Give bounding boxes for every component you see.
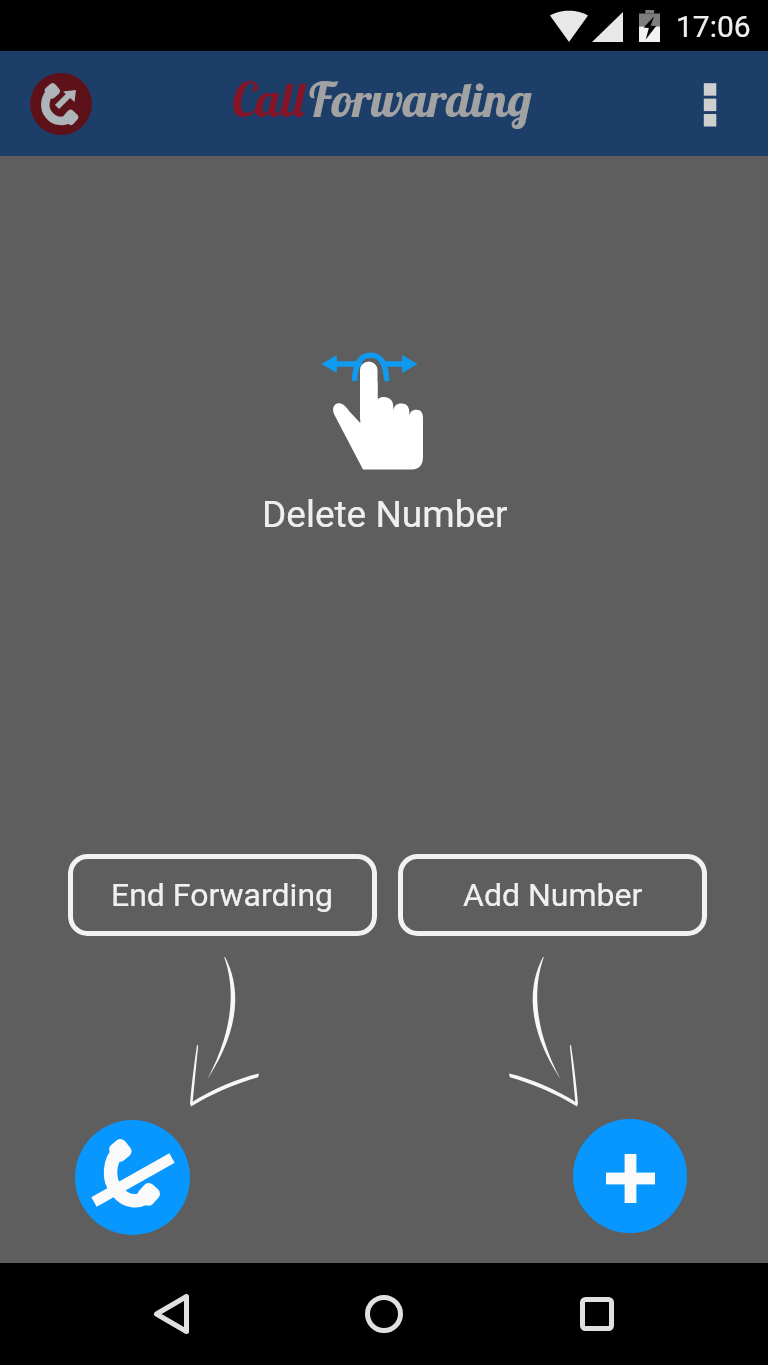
- button[interactable]: End call forwarding: [75, 1120, 190, 1235]
- button[interactable]: Call forwarding: [30, 73, 92, 135]
- button[interactable]: More options: [678, 52, 742, 155]
- button[interactable]: Back: [128, 1271, 214, 1357]
- staticText: End Forwarding: [111, 876, 334, 914]
- button[interactable]: Home: [341, 1271, 427, 1357]
- staticText: 17:06: [676, 9, 751, 44]
- button[interactable]: Add Number: [398, 854, 707, 936]
- staticText: Add Number: [463, 876, 643, 914]
- button[interactable]: Recent apps: [554, 1271, 640, 1357]
- button[interactable]: End Forwarding: [68, 854, 377, 936]
- button[interactable]: Add number: [573, 1119, 687, 1233]
- staticText: Delete Number: [262, 493, 508, 536]
- staticText: CallForwarding: [231, 69, 533, 129]
